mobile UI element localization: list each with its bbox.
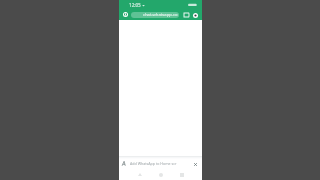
button[interactable]: Dismiss	[191, 160, 199, 168]
button[interactable]: Back	[135, 170, 144, 179]
staticText: chat.whatsapp.com/i	[143, 12, 179, 18]
button[interactable]: Home	[156, 170, 165, 179]
staticText: 12:05	[129, 2, 141, 8]
staticText: Add WhatsApp to Home scr	[130, 161, 191, 166]
button[interactable]: Recent apps	[177, 170, 186, 179]
button[interactable]: Page info	[121, 10, 130, 19]
button[interactable]: Switch tabs	[182, 11, 190, 19]
button[interactable]: chat.whatsapp.com/i	[131, 12, 179, 18]
button[interactable]: More options	[191, 11, 199, 19]
